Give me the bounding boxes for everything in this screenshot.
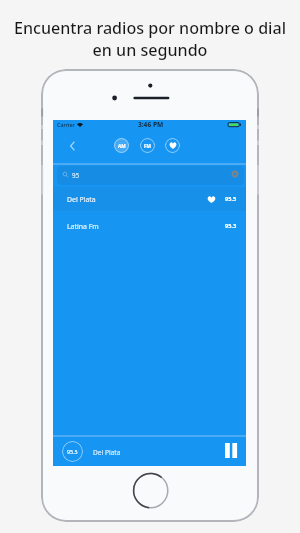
staticText: Del Plata (67, 195, 96, 204)
button[interactable]: Latina Fm (53, 211, 246, 241)
button[interactable] (165, 138, 180, 153)
staticText: 3:46 PM (138, 120, 164, 129)
staticText: Del Plata (93, 448, 121, 457)
button[interactable]: Clear search (57, 166, 244, 185)
staticText: Encuentra radios por nombre o dial en un… (0, 17, 300, 61)
staticText: Latina Fm (67, 222, 99, 231)
staticText: 95 (72, 171, 80, 179)
staticText: FM (144, 143, 151, 149)
button[interactable]: AM (114, 138, 129, 153)
staticText: 95.5 (225, 195, 237, 203)
button[interactable]: 95.5 (53, 434, 246, 466)
button[interactable]: FM (140, 138, 155, 153)
staticText: Carrier (57, 121, 75, 128)
button[interactable]: Back (62, 134, 82, 157)
staticText: 95.3 (225, 222, 237, 230)
staticText: 95.5 (67, 448, 78, 455)
button[interactable]: Del Plata (53, 187, 246, 211)
button[interactable]: Clear search (231, 170, 239, 178)
button[interactable]: Pause (223, 441, 239, 460)
staticText: AM (118, 143, 126, 149)
